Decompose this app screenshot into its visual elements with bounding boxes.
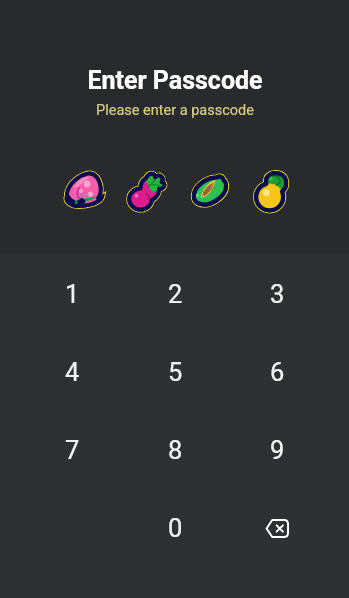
button[interactable]: Backspace	[226, 489, 328, 567]
button[interactable]: 8	[124, 411, 226, 489]
staticText: 9	[270, 435, 285, 465]
staticText: 6	[270, 357, 285, 387]
button[interactable]: 0	[124, 489, 226, 567]
staticText: 7	[65, 435, 80, 465]
staticText: 3	[270, 279, 285, 309]
staticText: 8	[168, 435, 183, 465]
staticText: 5	[168, 357, 183, 387]
other: Backspace	[255, 506, 299, 550]
staticText: 0	[168, 513, 183, 543]
staticText: 1	[65, 279, 80, 309]
button[interactable]: 2	[124, 255, 226, 333]
button[interactable]: 5	[124, 333, 226, 411]
button[interactable]: 7	[21, 411, 124, 489]
staticText: Please enter a passcode	[96, 102, 254, 119]
button[interactable]: 9	[226, 411, 328, 489]
button[interactable]: 4	[21, 333, 124, 411]
staticText: 4	[65, 357, 80, 387]
staticText: Enter Passcode	[87, 66, 263, 95]
button[interactable]: 1	[21, 255, 124, 333]
button[interactable]: 3	[226, 255, 328, 333]
staticText: 2	[168, 279, 183, 309]
button[interactable]: 6	[226, 333, 328, 411]
